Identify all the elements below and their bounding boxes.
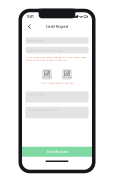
staticText: 9:41 — [27, 14, 34, 19]
staticText: NOTE: Please start mobile number with yo… — [25, 56, 86, 61]
button[interactable]: Enter your address — [25, 91, 89, 102]
button[interactable]: Select Image — [62, 69, 72, 80]
staticText: Your requirements description — [28, 109, 58, 111]
button[interactable]: Back — [26, 23, 33, 31]
staticText: Select Image — [62, 76, 72, 78]
staticText: Enter your name — [28, 39, 44, 42]
button[interactable]: Select Image — [42, 69, 52, 80]
staticText: Enter your address — [28, 93, 46, 96]
staticText: Send Request — [46, 150, 67, 154]
staticText: Mobile number with country code — [28, 49, 62, 52]
staticText: NOTE: Image upload is optional — [40, 82, 73, 84]
staticText: Select Image — [42, 76, 52, 78]
staticText: Credit Request — [46, 25, 68, 28]
button[interactable]: Your requirements description — [25, 107, 89, 118]
button[interactable]: Mobile number with country code — [25, 47, 89, 53]
button[interactable]: Send Request — [22, 147, 92, 157]
button[interactable]: Enter your name — [25, 37, 89, 44]
